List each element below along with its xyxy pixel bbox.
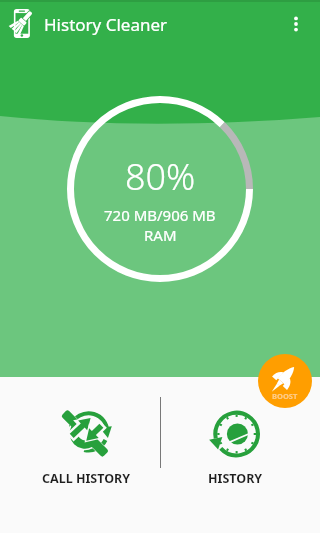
staticText: History Cleaner — [44, 13, 168, 36]
button[interactable]: Boost — [258, 354, 312, 408]
staticText: RAM — [144, 225, 177, 245]
staticText: HISTORY — [208, 470, 263, 487]
button[interactable]: More options — [276, 4, 316, 44]
staticText: BOOST — [272, 391, 298, 401]
staticText: 80% — [125, 152, 196, 201]
button[interactable]: CALL HISTORY — [26, 405, 146, 487]
staticText: CALL HISTORY — [42, 470, 131, 487]
staticText: 720 MB/906 MB — [104, 205, 216, 225]
button[interactable]: HISTORY — [175, 405, 295, 487]
